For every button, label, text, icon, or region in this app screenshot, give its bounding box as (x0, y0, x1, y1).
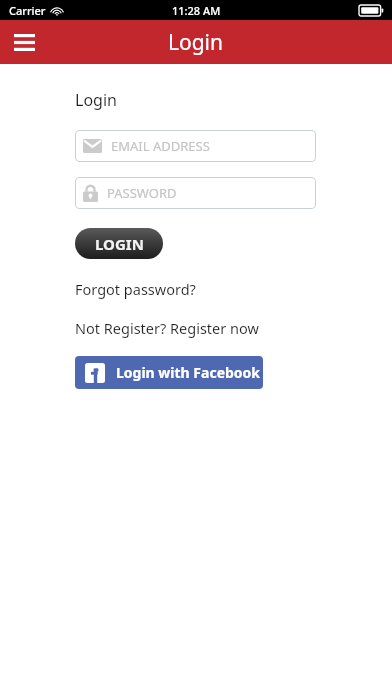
staticText: Login (168, 28, 224, 57)
staticText: Login with Facebook (116, 363, 261, 382)
staticText: EMAIL ADDRESS (111, 137, 210, 155)
staticText: 11:28 AM (172, 3, 221, 18)
staticText: Login (75, 89, 117, 111)
staticText: Carrier (9, 3, 46, 18)
button[interactable]: Not Register? Register now (75, 318, 259, 338)
staticText: LOGIN (95, 234, 144, 254)
button[interactable]: PASSWORD (75, 177, 316, 209)
button[interactable]: EMAIL ADDRESS (75, 130, 316, 162)
staticText: PASSWORD (107, 184, 177, 202)
button[interactable]: Forgot password? (75, 279, 196, 299)
button[interactable]: LOGIN (75, 228, 163, 259)
button[interactable]: Menu (4, 22, 44, 62)
button[interactable]: Login with Facebook (75, 356, 263, 389)
